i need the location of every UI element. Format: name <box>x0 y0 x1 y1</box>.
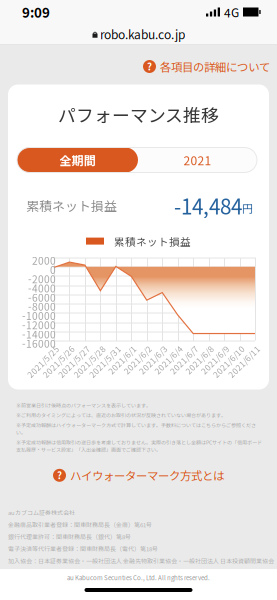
staticText: 加入協会：日本証券業協会・一般社団法人 金融先物取引業協会・一般社団法人 日本投… <box>8 556 274 565</box>
staticText: 金融商品取引業者登録：関東財務局長（金商）第61号 <box>8 520 152 529</box>
staticText: 2000 <box>32 253 56 268</box>
staticText: ハイウォーターマーク方式とは <box>70 467 224 484</box>
staticText: ※予定成功報酬はハイウォーターマーク方式で計算しています。手数料についてはこちら… <box>16 421 256 436</box>
staticText: 銀行代理業許可：関東財務局長（銀代）第8号 <box>8 532 131 541</box>
staticText: 0 <box>50 262 56 277</box>
staticText: 全期間 <box>59 151 95 169</box>
staticText: 各項目の詳細について <box>160 58 270 75</box>
staticText: 4G <box>224 3 239 21</box>
button[interactable]: 2021 <box>138 147 257 172</box>
staticText: 2021/5/25 <box>13 342 54 354</box>
staticText: -12000 <box>22 318 56 332</box>
button[interactable]: 全期間 <box>17 147 138 172</box>
staticText: パフォーマンス推移 <box>58 101 219 127</box>
staticText: 電子決済等代行業者登録：関東財務局長（電代）第18号 <box>8 544 158 553</box>
staticText: 累積ネット損益 <box>26 196 117 215</box>
button[interactable]: robo.kabu.co.jp <box>0 24 277 44</box>
staticText: 2021/5/27 <box>44 342 85 354</box>
staticText: 2021/5/28 <box>59 342 100 354</box>
staticText: 2021/6/1 <box>95 342 131 354</box>
staticText: 2021/6/10 <box>198 342 239 354</box>
staticText: -14000 <box>22 327 56 341</box>
staticText: 累積ネット損益 <box>114 233 191 249</box>
staticText: -8000 <box>28 299 56 314</box>
staticText: 2021/6/3 <box>126 342 162 354</box>
staticText: ※ご利用のタイミングによっては、直近のお取引の状況が反映されていない場合がありま… <box>16 411 226 419</box>
staticText: -14,484 <box>174 190 242 220</box>
staticText: 2021/6/8 <box>173 342 209 354</box>
staticText: 2021/6/11 <box>214 342 255 354</box>
staticText: 9:09 <box>22 2 50 22</box>
staticText: 2021/5/26 <box>28 342 69 354</box>
staticText: au Kabucom Securities Co., Ltd. All righ… <box>67 573 210 582</box>
staticText: 2021/6/7 <box>157 342 193 354</box>
staticText: robo.kabu.co.jp <box>100 25 185 43</box>
staticText: -4000 <box>28 281 56 295</box>
staticText: 2021 <box>183 151 211 169</box>
staticText: ※予定成功報酬は信用取引の逆日歩を考慮しておりません。実際の引き落とし金額はPC… <box>16 439 262 453</box>
staticText: 円 <box>242 200 253 216</box>
staticText: -10000 <box>22 308 56 323</box>
staticText: ? <box>147 59 152 73</box>
staticText: -6000 <box>28 290 56 305</box>
button[interactable]: ? <box>0 55 277 77</box>
staticText: ※前営業日引け後時点のパフォーマンスを表示しています。 <box>16 401 151 409</box>
staticText: -16000 <box>22 336 56 351</box>
staticText: ? <box>57 468 62 482</box>
staticText: 2021/6/2 <box>111 342 147 354</box>
button[interactable]: ? <box>53 465 224 485</box>
staticText: 2021/5/31 <box>75 342 116 354</box>
staticText: 2021/6/9 <box>188 342 224 354</box>
staticText: 2021/6/4 <box>142 342 178 354</box>
staticText: auカブコム証券株式会社 <box>8 508 75 517</box>
staticText: -2000 <box>28 271 56 286</box>
